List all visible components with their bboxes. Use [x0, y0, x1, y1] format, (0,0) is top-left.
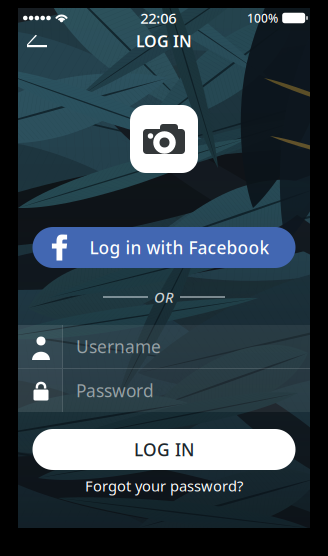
staticText: 100% — [247, 10, 278, 26]
button[interactable]: Back — [18, 28, 57, 53]
staticText: 22:06 — [140, 8, 176, 28]
staticText: Username — [76, 335, 161, 358]
button[interactable]: LOG IN — [32, 429, 295, 470]
staticText: LOG IN — [136, 30, 192, 52]
staticText: Forgot your password? — [85, 476, 243, 495]
button[interactable]: Log in with Facebook — [32, 227, 295, 268]
staticText: LOG IN — [134, 438, 194, 461]
staticText: Password — [76, 379, 154, 402]
staticText: Log in with Facebook — [89, 236, 269, 259]
button[interactable]: Forgot your password? — [73, 471, 255, 500]
staticText: OR — [154, 287, 174, 307]
